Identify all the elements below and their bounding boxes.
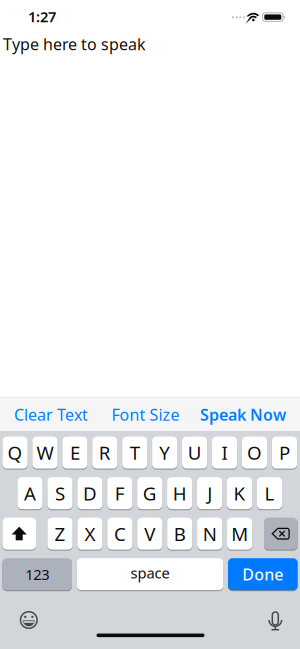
staticText: J (207, 481, 212, 506)
button[interactable]: T (122, 437, 147, 469)
button[interactable]: Delete (264, 518, 298, 550)
staticText: L (264, 481, 274, 506)
staticText: 123 (25, 564, 49, 584)
button[interactable]: S (47, 477, 72, 509)
button[interactable]: J (197, 477, 222, 509)
button[interactable]: O (242, 437, 267, 469)
button[interactable]: Clear Text (10, 404, 92, 425)
button[interactable]: Q (2, 437, 28, 469)
staticText: Q (7, 440, 22, 465)
staticText: O (247, 440, 262, 465)
button[interactable]: C (107, 518, 132, 550)
button[interactable]: Z (47, 518, 73, 550)
staticText: H (173, 481, 187, 506)
button[interactable]: Emoji (19, 610, 38, 629)
button[interactable]: H (167, 477, 192, 509)
staticText: F (115, 481, 125, 506)
button[interactable]: F (107, 477, 132, 509)
staticText: Speak Now (200, 404, 286, 425)
staticText: T (130, 440, 140, 465)
button[interactable]: I (212, 437, 237, 469)
button[interactable]: 123 (2, 558, 72, 590)
staticText: Z (54, 521, 65, 546)
staticText: U (188, 440, 202, 465)
button[interactable]: M (227, 518, 252, 550)
staticText: M (231, 521, 248, 546)
staticText: W (36, 440, 53, 465)
staticText: I (222, 440, 228, 465)
staticText: G (143, 481, 157, 506)
staticText: P (279, 440, 290, 465)
button[interactable]: P (272, 437, 297, 469)
button[interactable]: Y (152, 437, 177, 469)
staticText: R (99, 440, 111, 465)
button[interactable]: W (32, 437, 57, 469)
button[interactable]: Shift (2, 518, 36, 550)
staticText: 1:27 (28, 7, 56, 26)
staticText: C (114, 521, 126, 546)
staticText: V (144, 521, 155, 546)
button[interactable]: R (92, 437, 117, 469)
staticText: D (83, 481, 97, 506)
staticText: Done (242, 564, 283, 585)
button[interactable]: L (257, 477, 282, 509)
button[interactable]: space (77, 558, 223, 590)
button[interactable]: D (77, 477, 102, 509)
button[interactable]: Done (228, 558, 298, 590)
staticText: A (24, 481, 36, 506)
staticText: Clear Text (14, 404, 88, 425)
button[interactable]: E (62, 437, 87, 469)
button[interactable]: G (137, 477, 162, 509)
staticText: space (130, 563, 169, 582)
staticText: Type here to speak (3, 33, 146, 55)
button[interactable]: A (17, 477, 43, 509)
staticText: N (203, 521, 217, 546)
button[interactable]: X (77, 518, 102, 550)
button[interactable]: V (137, 518, 162, 550)
button[interactable]: B (167, 518, 192, 550)
staticText: E (70, 440, 80, 465)
button[interactable]: Dictate (265, 610, 285, 630)
staticText: K (234, 481, 246, 506)
button[interactable]: Font Size (107, 404, 183, 425)
button[interactable]: K (227, 477, 252, 509)
button[interactable]: N (197, 518, 222, 550)
staticText: Font Size (111, 404, 179, 425)
button[interactable]: Speak Now (196, 404, 290, 425)
staticText: B (174, 521, 186, 546)
staticText: X (84, 521, 95, 546)
button[interactable]: U (182, 437, 207, 469)
staticText: S (55, 481, 65, 506)
staticText: Y (159, 440, 170, 465)
